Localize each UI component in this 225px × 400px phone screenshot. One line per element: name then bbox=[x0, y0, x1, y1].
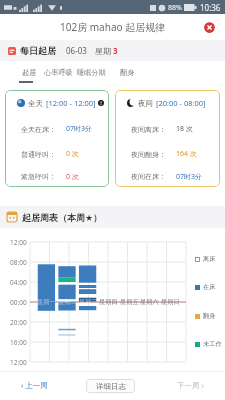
staticText: 星期四 bbox=[99, 298, 118, 306]
staticText: 04:00 bbox=[10, 278, 27, 287]
staticText: 下一周 › bbox=[177, 380, 204, 390]
staticText: 未工作 bbox=[203, 340, 222, 348]
staticText: 164 次 bbox=[176, 149, 197, 159]
staticText: 夜间离床： bbox=[131, 125, 166, 134]
staticText: 0 次 bbox=[66, 149, 79, 159]
staticText: 20:00 bbox=[10, 318, 27, 327]
staticText: 16:00 bbox=[10, 338, 27, 347]
staticText: 0 次 bbox=[66, 172, 79, 182]
button[interactable]: 全天 bbox=[5, 90, 109, 187]
staticText: 夜间在床： bbox=[131, 172, 166, 181]
button[interactable]: 心率呼吸 bbox=[42, 61, 74, 83]
staticText: 08:00 bbox=[10, 258, 27, 267]
staticText: 普通呼叫： bbox=[21, 150, 56, 159]
staticText: 07时3分 bbox=[66, 124, 93, 134]
button[interactable]: 详细日志 bbox=[86, 379, 135, 393]
staticText: 星期六 bbox=[140, 298, 159, 306]
button[interactable]: 起居 bbox=[15, 61, 43, 83]
staticText: [12:00 - 12:00] bbox=[46, 98, 96, 108]
staticText: 起居 bbox=[22, 68, 37, 77]
staticText: [20:00 - 08:00] bbox=[156, 98, 206, 108]
staticText: 06-03 bbox=[66, 45, 87, 56]
staticText: 离床 bbox=[203, 255, 216, 263]
staticText: 18 次 bbox=[176, 124, 193, 134]
staticText: 星期 bbox=[95, 46, 111, 56]
staticText: ‹ 上一周 bbox=[21, 380, 48, 390]
button[interactable]: 夜间 bbox=[115, 90, 220, 187]
staticText: 07时3分 bbox=[176, 172, 203, 182]
staticText: 紧急呼叫： bbox=[21, 172, 56, 181]
staticText: 星期日 bbox=[161, 298, 180, 306]
staticText: 详细日志 bbox=[96, 382, 126, 391]
staticText: 每日起居 bbox=[20, 45, 56, 56]
button[interactable]: 睡眠分期 bbox=[75, 61, 107, 83]
staticText: 全天在床： bbox=[21, 125, 56, 134]
staticText: 3 bbox=[113, 45, 118, 56]
staticText: 在床 bbox=[203, 283, 216, 291]
button[interactable]: 翻身 bbox=[113, 61, 141, 83]
staticText: 星期一 bbox=[37, 298, 56, 306]
staticText: 星期二 bbox=[58, 298, 77, 306]
staticText: 00:00 bbox=[10, 298, 27, 307]
staticText: 10:36 bbox=[200, 2, 221, 13]
staticText: 12:00 bbox=[10, 238, 27, 247]
staticText: 12:00 bbox=[10, 358, 27, 367]
button[interactable]: 下一周 › bbox=[170, 373, 210, 397]
staticText: 星期五 bbox=[120, 298, 139, 306]
staticText: 88% bbox=[168, 3, 182, 13]
staticText: 心率呼吸 bbox=[44, 68, 73, 77]
staticText: 起居周表（本周★） bbox=[22, 212, 103, 223]
staticText: 睡眠分期 bbox=[77, 68, 106, 77]
staticText: 夜间 bbox=[138, 99, 153, 108]
staticText: 夜间翻身： bbox=[131, 150, 166, 159]
button[interactable]: Close bbox=[204, 22, 215, 33]
staticText: 翻身 bbox=[203, 312, 216, 320]
staticText: 翻身 bbox=[120, 68, 135, 77]
staticText: 102房 mahao 起居规律 bbox=[60, 20, 166, 34]
button[interactable]: ‹ 上一周 bbox=[14, 373, 54, 397]
staticText: 星期三 bbox=[79, 298, 98, 306]
staticText: 全天 bbox=[28, 99, 43, 108]
